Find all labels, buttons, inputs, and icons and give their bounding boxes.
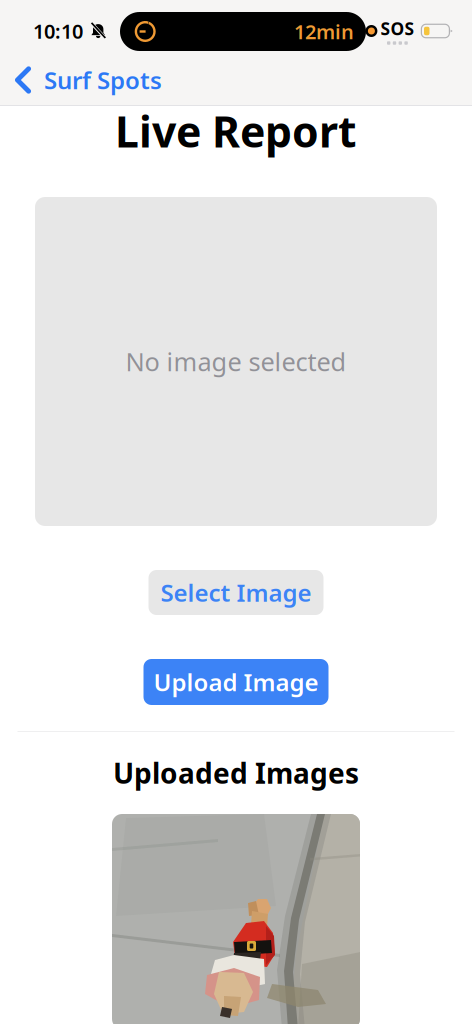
staticText: Live Report (115, 103, 357, 159)
staticText: 12min (294, 18, 354, 45)
staticText: Uploaded Images (113, 754, 359, 792)
staticText: Select Image (160, 577, 311, 608)
staticText: SOS (380, 17, 414, 40)
staticText: Surf Spots (44, 64, 162, 96)
staticText: Upload Image (153, 666, 318, 698)
button[interactable]: Upload Image (143, 659, 328, 705)
staticText: No image selected (125, 345, 346, 378)
button[interactable]: Select Image (148, 570, 323, 615)
button[interactable]: Surf Spots (0, 56, 190, 104)
staticText: 10:10 (33, 18, 83, 44)
